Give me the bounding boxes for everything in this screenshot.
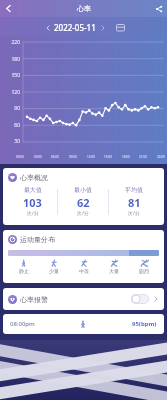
staticText: 08:00pm: [10, 320, 35, 328]
staticText: 12:00: [87, 155, 95, 159]
staticText: 次/分: [27, 210, 39, 217]
button[interactable]: Share: [150, 0, 167, 17]
staticText: 21:00: [139, 155, 147, 159]
staticText: 18:00: [122, 155, 130, 159]
staticText: 心率概况: [20, 173, 48, 182]
staticText: 15:00: [104, 155, 112, 159]
staticText: 中等: [79, 268, 89, 274]
button[interactable]: 静止: [8, 259, 39, 274]
staticText: 09:00: [69, 155, 77, 159]
staticText: 95(bpm): [132, 320, 157, 328]
staticText: 次/分: [77, 210, 89, 217]
staticText: 次/分: [128, 210, 140, 217]
staticText: 24:00: [157, 155, 165, 159]
staticText: 心率: [77, 4, 91, 13]
staticText: 180: [0, 56, 20, 63]
staticText: 心率报警: [20, 295, 48, 304]
staticText: 150: [0, 72, 20, 79]
button[interactable]: 少量: [39, 259, 69, 274]
staticText: 81: [128, 195, 141, 210]
staticText: 103: [23, 195, 42, 210]
button[interactable]: Back: [0, 0, 17, 17]
button[interactable]: 08:00pm: [10, 314, 157, 334]
button[interactable]: Next day: [96, 21, 109, 34]
staticText: 少量: [49, 268, 59, 274]
staticText: 62: [77, 195, 90, 210]
button[interactable]: 大量: [99, 259, 129, 274]
staticText: 90: [0, 105, 20, 112]
staticText: 大量: [109, 268, 119, 274]
staticText: 60: [0, 122, 20, 129]
staticText: 最小值: [74, 186, 92, 194]
button[interactable]: 剧烈: [129, 259, 159, 274]
staticText: 30: [0, 138, 20, 145]
staticText: 最大值: [24, 186, 42, 194]
staticText: 剧烈: [139, 268, 149, 274]
button[interactable]: Calendar: [113, 20, 127, 34]
staticText: 06:00: [51, 155, 59, 159]
staticText: 静止: [19, 268, 29, 274]
button[interactable]: Previous day: [41, 21, 54, 34]
staticText: 运动量分布: [20, 235, 55, 244]
staticText: 03:00: [34, 155, 42, 159]
staticText: 120: [0, 89, 20, 96]
staticText: 平均值: [125, 186, 143, 194]
staticText: 00:00: [16, 155, 24, 159]
staticText: 2022-05-11: [54, 22, 96, 33]
button[interactable]: 心率报警: [8, 288, 159, 310]
button[interactable]: Heart rate alarm toggle: [131, 294, 149, 304]
button[interactable]: 中等: [69, 259, 99, 274]
staticText: 220: [0, 39, 20, 46]
